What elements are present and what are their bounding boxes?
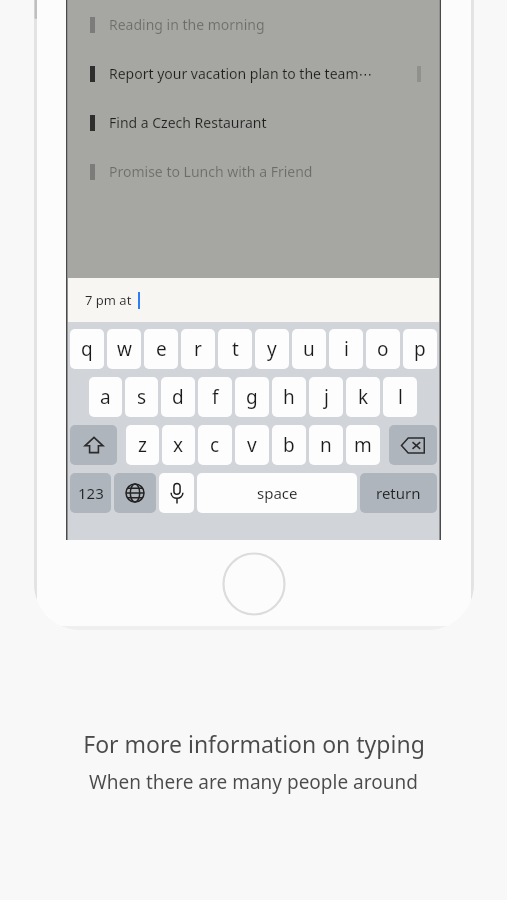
button[interactable]: k <box>346 377 380 417</box>
staticText: For more information on typing <box>83 728 425 759</box>
staticText: n <box>320 432 332 458</box>
button[interactable]: Reading in the morning <box>68 0 439 49</box>
staticText: f <box>212 384 219 410</box>
staticText: m <box>354 432 372 458</box>
staticText: t <box>232 336 239 362</box>
staticText: w <box>117 336 132 362</box>
button[interactable]: z <box>126 425 159 465</box>
staticText: x <box>173 432 184 458</box>
button[interactable]: r <box>181 329 215 369</box>
staticText: u <box>303 336 315 362</box>
staticText: 7 pm at <box>85 291 132 309</box>
staticText: b <box>283 432 295 458</box>
button[interactable]: m <box>346 425 380 465</box>
staticText: l <box>398 384 403 410</box>
button[interactable]: Find a Czech Restaurant <box>68 98 439 147</box>
staticText: i <box>344 336 349 362</box>
staticText: y <box>267 336 277 362</box>
button[interactable]: Switch keyboard language <box>114 473 156 513</box>
button[interactable]: h <box>272 377 306 417</box>
button[interactable]: q <box>70 329 104 369</box>
staticText: r <box>194 336 202 362</box>
button[interactable]: w <box>107 329 141 369</box>
staticText: Promise to Lunch with a Friend <box>109 162 313 181</box>
button[interactable]: t <box>218 329 252 369</box>
staticText: return <box>376 483 421 503</box>
button[interactable]: a <box>89 377 122 417</box>
staticText: s <box>137 384 147 410</box>
button[interactable]: y <box>255 329 289 369</box>
button[interactable]: x <box>162 425 195 465</box>
button[interactable]: n <box>309 425 343 465</box>
staticText: e <box>156 336 167 362</box>
staticText: 123 <box>78 483 104 503</box>
staticText: space <box>257 483 298 503</box>
button[interactable]: c <box>198 425 232 465</box>
staticText: g <box>246 384 258 410</box>
button[interactable]: p <box>403 329 437 369</box>
button[interactable]: u <box>292 329 326 369</box>
button[interactable]: j <box>309 377 343 417</box>
button[interactable]: Report your vacation plan to the team⋯ <box>68 49 439 98</box>
staticText: Find a Czech Restaurant <box>109 113 267 132</box>
button[interactable]: s <box>125 377 158 417</box>
button[interactable]: Backspace <box>389 425 437 465</box>
button[interactable]: i <box>329 329 363 369</box>
staticText: Reading in the morning <box>109 15 265 34</box>
staticText: p <box>414 336 426 362</box>
button[interactable]: g <box>235 377 269 417</box>
staticText: d <box>172 384 184 410</box>
staticText: o <box>377 336 389 362</box>
staticText: z <box>138 432 147 458</box>
button[interactable]: Voice input <box>159 473 194 513</box>
button[interactable]: d <box>161 377 195 417</box>
staticText: When there are many people around <box>89 769 418 795</box>
button[interactable]: return <box>360 473 437 513</box>
staticText: a <box>100 384 111 410</box>
staticText: h <box>283 384 295 410</box>
button[interactable]: v <box>235 425 269 465</box>
button[interactable]: Home <box>222 552 286 616</box>
staticText: j <box>324 384 329 410</box>
staticText: c <box>210 432 220 458</box>
staticText: q <box>81 336 93 362</box>
staticText: v <box>247 432 257 458</box>
button[interactable]: e <box>144 329 178 369</box>
button[interactable]: o <box>366 329 400 369</box>
button[interactable]: f <box>198 377 232 417</box>
button[interactable]: space <box>197 473 357 513</box>
button[interactable]: Promise to Lunch with a Friend <box>68 147 439 196</box>
button[interactable]: b <box>272 425 306 465</box>
button[interactable]: l <box>383 377 417 417</box>
staticText: Report your vacation plan to the team⋯ <box>109 64 373 83</box>
button[interactable]: Shift <box>70 425 117 465</box>
staticText: k <box>358 384 369 410</box>
button[interactable]: 123 <box>70 473 111 513</box>
